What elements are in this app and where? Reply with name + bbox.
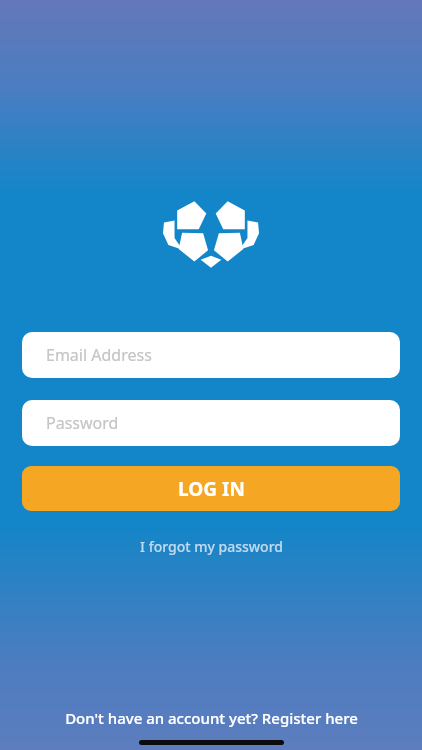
staticText: LOG IN xyxy=(178,476,245,502)
staticText: I forgot my password xyxy=(140,537,283,556)
button[interactable]: Don't have an account yet? Register here xyxy=(0,704,422,732)
staticText: Password xyxy=(46,412,119,434)
button[interactable]: Email Address xyxy=(22,332,400,378)
button[interactable]: LOG IN xyxy=(22,466,400,511)
button[interactable]: I forgot my password xyxy=(0,533,422,560)
staticText: Email Address xyxy=(46,344,152,366)
other: App logo xyxy=(162,200,260,268)
staticText: Don't have an account yet? Register here xyxy=(65,708,358,728)
button[interactable]: Password xyxy=(22,400,400,446)
